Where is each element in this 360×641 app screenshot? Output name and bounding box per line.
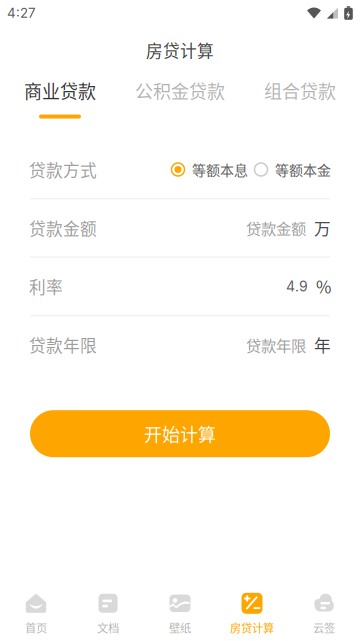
button[interactable]: 云签 <box>288 588 360 641</box>
button[interactable]: 等额本息 <box>171 159 248 180</box>
button[interactable]: 首页 <box>0 588 72 641</box>
staticText: 贷款方式 <box>29 157 97 181</box>
staticText: 贷款年限 <box>29 333 97 357</box>
staticText: 商业贷款 <box>24 77 96 104</box>
staticText: 组合贷款 <box>264 77 336 104</box>
button[interactable]: 组合贷款 <box>240 77 360 119</box>
staticText: 首页 <box>25 619 47 636</box>
staticText: 等额本息 <box>192 159 248 180</box>
staticText: 公积金贷款 <box>135 77 225 104</box>
staticText: 房贷计算 <box>146 38 214 62</box>
staticText: 利率 <box>29 274 63 298</box>
staticText: 等额本金 <box>275 159 331 180</box>
staticText: 贷款年限 <box>246 334 306 356</box>
button[interactable]: 等额本金 <box>254 159 331 180</box>
button[interactable]: 公积金贷款 <box>120 77 240 119</box>
staticText: 文档 <box>97 619 119 636</box>
staticText: 4:27 <box>7 5 36 21</box>
staticText: 房贷计算 <box>230 619 274 636</box>
button[interactable]: 房贷计算 <box>216 588 288 641</box>
button[interactable]: 开始计算 <box>30 410 330 457</box>
staticText: % <box>316 274 331 298</box>
staticText: 4.9 <box>286 278 308 295</box>
staticText: 年 <box>314 333 331 357</box>
staticText: 开始计算 <box>144 421 216 447</box>
button[interactable]: 壁纸 <box>144 588 216 641</box>
staticText: 贷款金额 <box>246 217 306 239</box>
staticText: 贷款金额 <box>29 216 97 240</box>
staticText: 万 <box>314 216 331 240</box>
button[interactable]: 文档 <box>72 588 144 641</box>
staticText: 壁纸 <box>169 619 191 636</box>
button[interactable]: 商业贷款 <box>0 77 120 119</box>
staticText: 云签 <box>313 619 335 636</box>
